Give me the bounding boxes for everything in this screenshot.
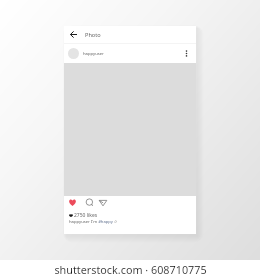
staticText: shutterstock.com · 608710775 bbox=[54, 262, 207, 277]
button[interactable]: Back bbox=[68, 29, 79, 40]
button[interactable]: Comment bbox=[84, 197, 94, 207]
staticText: happyuser I'm #happy :) bbox=[69, 219, 117, 225]
button[interactable]: Like bbox=[67, 197, 77, 207]
button[interactable]: More options bbox=[182, 49, 191, 58]
staticText: happyuser bbox=[83, 51, 104, 57]
staticText: 2750 likes bbox=[74, 212, 98, 219]
button[interactable]: Share bbox=[98, 197, 108, 207]
staticText: Photo bbox=[85, 31, 101, 39]
